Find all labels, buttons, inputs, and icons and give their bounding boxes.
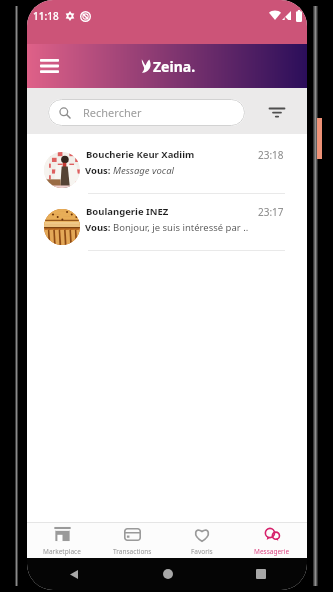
staticText: Vous: Bonjour, je suis intéressé par ..: [85, 221, 249, 234]
staticText: 23:18: [258, 148, 284, 162]
button[interactable]: Rechercher: [48, 99, 245, 126]
button[interactable]: Boucherie Keur Xadiim: [27, 137, 307, 194]
button[interactable]: Boulangerie INEZ: [27, 194, 307, 251]
button[interactable]: Filtrer: [262, 97, 292, 127]
staticText: Messagerie: [254, 547, 290, 556]
button[interactable]: Récents: [251, 564, 271, 584]
staticText: Transactions: [113, 547, 152, 556]
button[interactable]: Favoris: [167, 523, 237, 558]
staticText: Favoris: [191, 547, 213, 556]
button[interactable]: Accueil: [158, 564, 178, 584]
staticText: 11:18: [33, 9, 59, 23]
staticText: Marketplace: [43, 547, 81, 556]
staticText: Rechercher: [83, 105, 142, 120]
staticText: Vous: Message vocal: [85, 164, 174, 177]
button[interactable]: Retour: [64, 564, 84, 584]
staticText: 23:17: [258, 205, 284, 219]
staticText: Boulangerie INEZ: [86, 205, 169, 218]
button[interactable]: Marketplace: [27, 523, 97, 558]
staticText: Zeina.: [153, 57, 196, 76]
staticText: Boucherie Keur Xadiim: [86, 148, 195, 161]
button[interactable]: Menu: [32, 49, 66, 83]
button[interactable]: Transactions: [97, 523, 167, 558]
button[interactable]: Messagerie: [237, 523, 307, 558]
